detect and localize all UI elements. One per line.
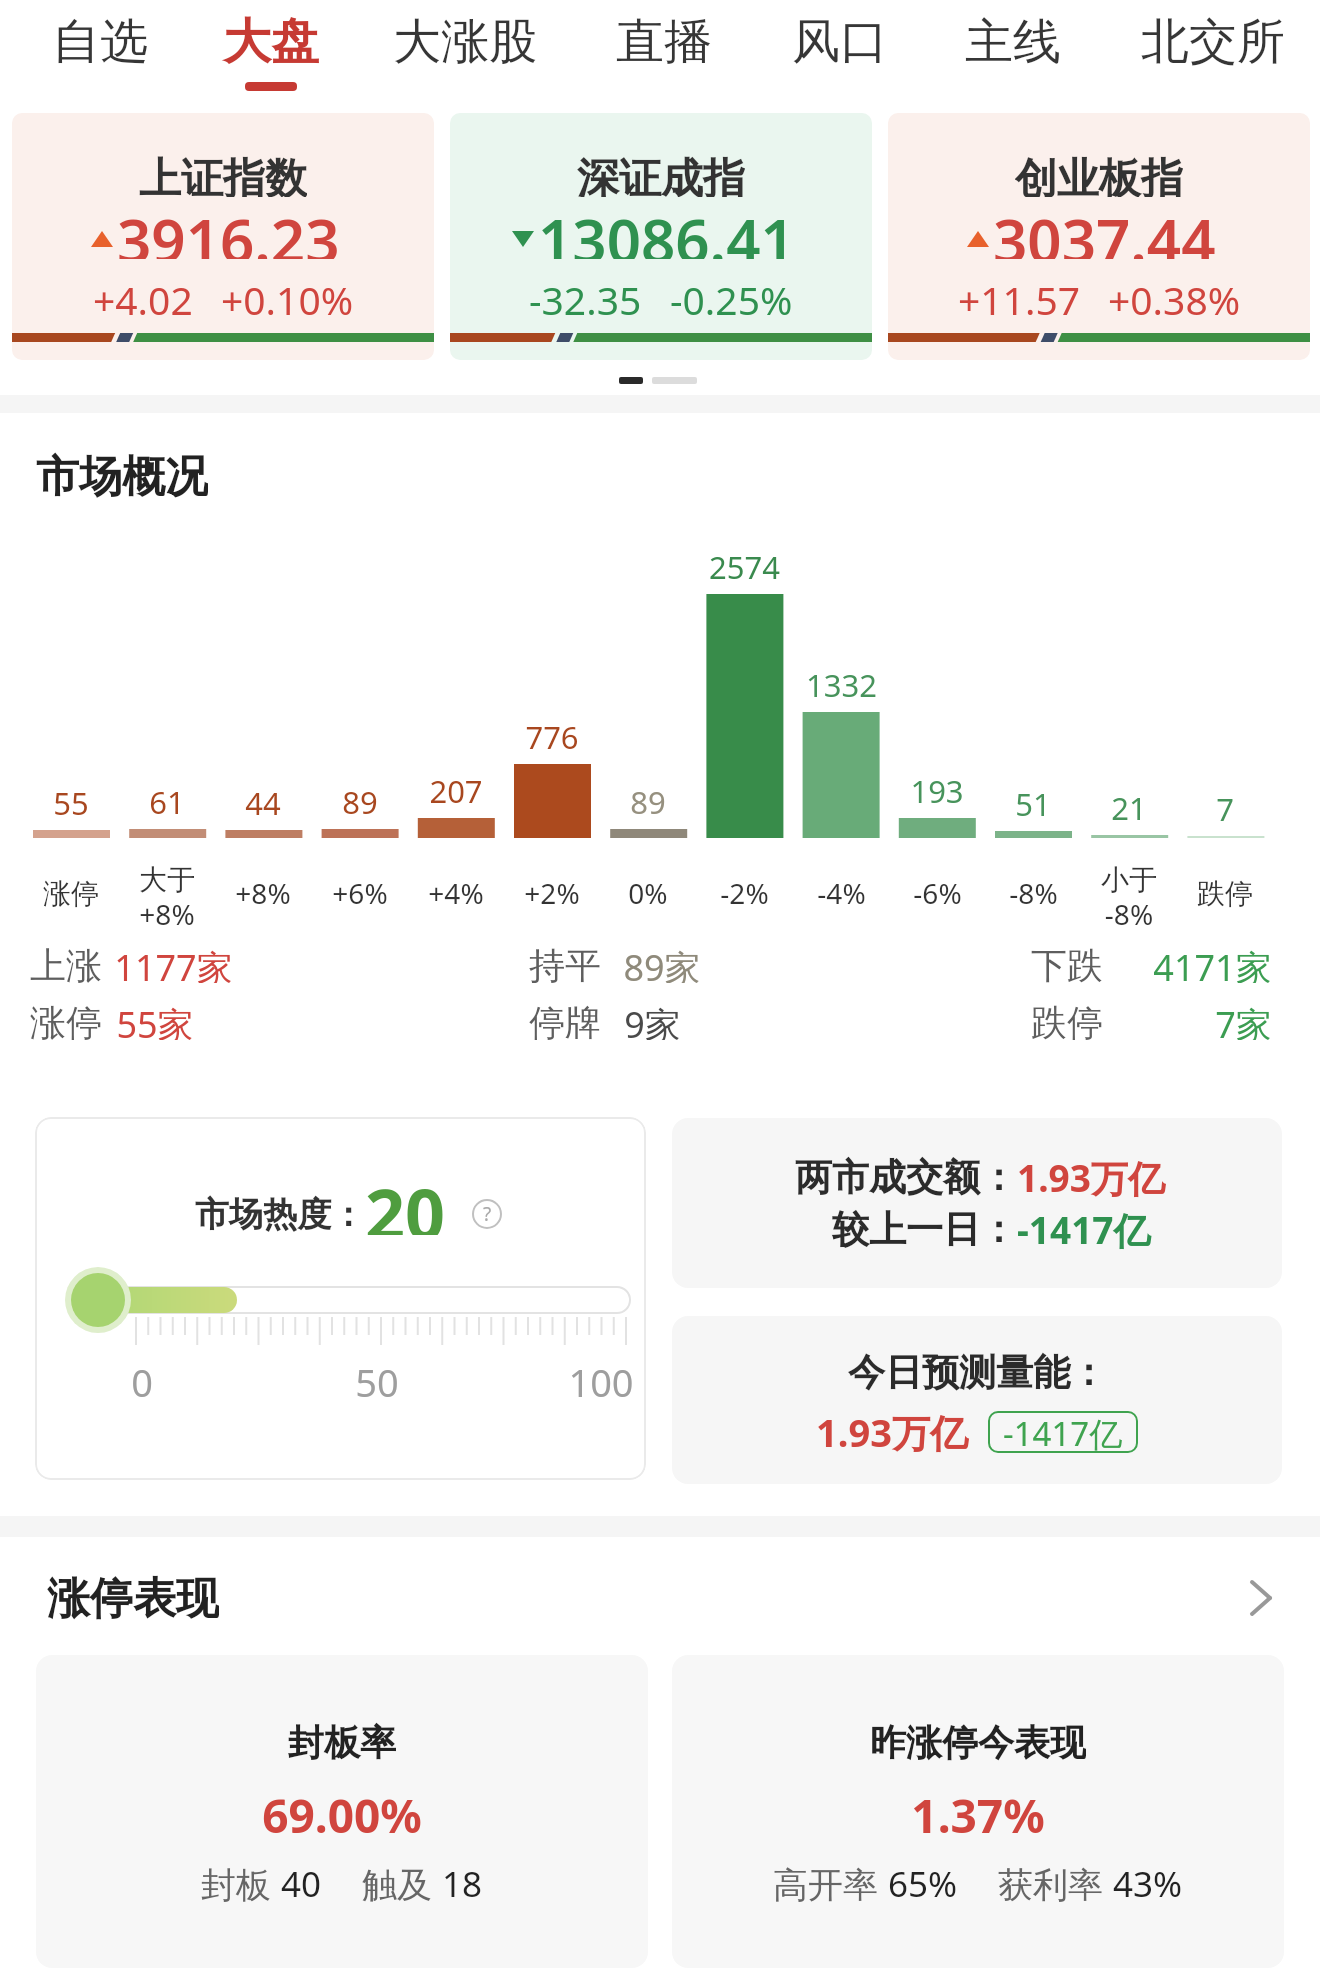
- staticText: 43%: [1113, 1860, 1183, 1904]
- staticText: 4171家: [1153, 943, 1272, 983]
- staticText: 55家: [116, 1000, 194, 1040]
- staticText: 涨停表现: [47, 1572, 219, 1622]
- staticText: 涨停: [43, 876, 99, 911]
- button[interactable]: 自选: [45, 10, 155, 74]
- staticText: 1.93万亿: [816, 1406, 968, 1458]
- staticText: 50: [355, 1356, 399, 1400]
- staticText: 跌停: [1031, 1000, 1103, 1040]
- staticText: 20: [365, 1165, 446, 1235]
- staticText: 封板率: [288, 1720, 396, 1764]
- button[interactable]: 市场热度：: [35, 1117, 646, 1480]
- staticText: 北交所: [1141, 12, 1285, 72]
- staticText: 0%: [628, 874, 668, 912]
- staticText: 大涨股: [393, 12, 537, 72]
- staticText: 两市成交额：: [795, 1154, 1017, 1201]
- staticText: 持平: [529, 943, 601, 983]
- staticText: 跌停: [1197, 876, 1253, 911]
- staticText: 小于 -8%: [1101, 862, 1157, 933]
- staticText: +11.57: [958, 273, 1080, 315]
- staticText: 大盘: [223, 12, 319, 72]
- button[interactable]: [888, 113, 1310, 360]
- staticText: ?: [483, 1201, 492, 1227]
- staticText: 9家: [624, 1000, 681, 1040]
- staticText: 89: [342, 781, 378, 819]
- staticText: 7: [1216, 788, 1234, 826]
- staticText: 上涨: [30, 943, 102, 983]
- staticText: 0: [131, 1356, 153, 1400]
- button[interactable]: 大涨股: [385, 10, 545, 74]
- staticText: 40: [281, 1860, 322, 1904]
- staticText: 51: [1015, 783, 1051, 821]
- staticText: -4%: [817, 874, 866, 912]
- staticText: +8%: [235, 874, 291, 912]
- staticText: -0.25%: [670, 273, 793, 315]
- staticText: +0.38%: [1108, 273, 1241, 315]
- staticText: 65%: [888, 1860, 958, 1904]
- button[interactable]: [450, 113, 872, 360]
- button[interactable]: [1246, 1580, 1274, 1616]
- staticText: 2574: [709, 546, 780, 584]
- staticText: 较上一日：: [832, 1206, 1017, 1253]
- staticText: -1417亿: [1003, 1411, 1123, 1453]
- staticText: 创业板指: [1015, 153, 1183, 197]
- staticText: 今日预测量能：: [848, 1349, 1107, 1396]
- staticText: +4%: [428, 874, 484, 912]
- staticText: 1177家: [114, 943, 233, 983]
- staticText: 44: [245, 782, 281, 820]
- staticText: 100: [568, 1356, 634, 1400]
- staticText: 触及: [362, 1860, 442, 1904]
- staticText: 18: [442, 1860, 483, 1904]
- staticText: 深证成指: [577, 153, 745, 197]
- staticText: -1417亿: [1017, 1204, 1151, 1255]
- staticText: 直播: [616, 12, 712, 72]
- staticText: +6%: [332, 874, 388, 912]
- staticText: +2%: [524, 874, 580, 912]
- staticText: -8%: [1009, 874, 1058, 912]
- button[interactable]: 风口: [785, 10, 895, 74]
- staticText: 大于 +8%: [139, 862, 195, 933]
- button[interactable]: [672, 1655, 1284, 1968]
- staticText: -2%: [720, 874, 769, 912]
- staticText: 封板: [201, 1860, 281, 1904]
- button[interactable]: 主线: [958, 10, 1068, 74]
- staticText: 7家: [1215, 1000, 1272, 1040]
- staticText: 高开率: [773, 1860, 888, 1904]
- staticText: -32.35: [529, 273, 642, 315]
- staticText: 自选: [52, 12, 148, 72]
- button[interactable]: 今日预测量能：: [672, 1316, 1282, 1484]
- staticText: 21: [1111, 787, 1147, 825]
- staticText: 1.37%: [911, 1784, 1045, 1834]
- button[interactable]: 北交所: [1133, 10, 1293, 74]
- staticText: +0.10%: [221, 273, 354, 315]
- staticText: +4.02: [93, 273, 193, 315]
- button[interactable]: 直播: [609, 10, 719, 74]
- staticText: 207: [429, 770, 483, 808]
- staticText: 89家: [623, 943, 701, 983]
- button[interactable]: 大盘: [216, 10, 326, 74]
- staticText: 89: [630, 781, 666, 819]
- staticText: 昨涨停今表现: [870, 1720, 1086, 1764]
- staticText: 3916.23: [117, 199, 340, 259]
- staticText: 13086.41: [538, 199, 795, 259]
- staticText: 涨停: [30, 1000, 102, 1040]
- staticText: 上证指数: [139, 153, 307, 197]
- staticText: 193: [910, 770, 964, 808]
- button[interactable]: [36, 1655, 648, 1968]
- staticText: 市场热度：: [195, 1193, 365, 1236]
- button[interactable]: [12, 113, 434, 360]
- staticText: 主线: [965, 12, 1061, 72]
- staticText: 3037.44: [993, 199, 1216, 259]
- staticText: 776: [525, 716, 579, 754]
- staticText: 风口: [792, 12, 888, 72]
- staticText: 55: [53, 782, 89, 820]
- staticText: -6%: [913, 874, 962, 912]
- staticText: 1.93万亿: [1017, 1152, 1165, 1203]
- staticText: 1332: [806, 664, 877, 702]
- button[interactable]: 两市成交额：: [672, 1118, 1282, 1288]
- staticText: 69.00%: [262, 1784, 422, 1834]
- staticText: 市场概况: [36, 450, 208, 498]
- staticText: 获利率: [998, 1860, 1113, 1904]
- staticText: 停牌: [529, 1000, 601, 1040]
- staticText: 61: [149, 781, 185, 819]
- staticText: 下跌: [1031, 943, 1103, 983]
